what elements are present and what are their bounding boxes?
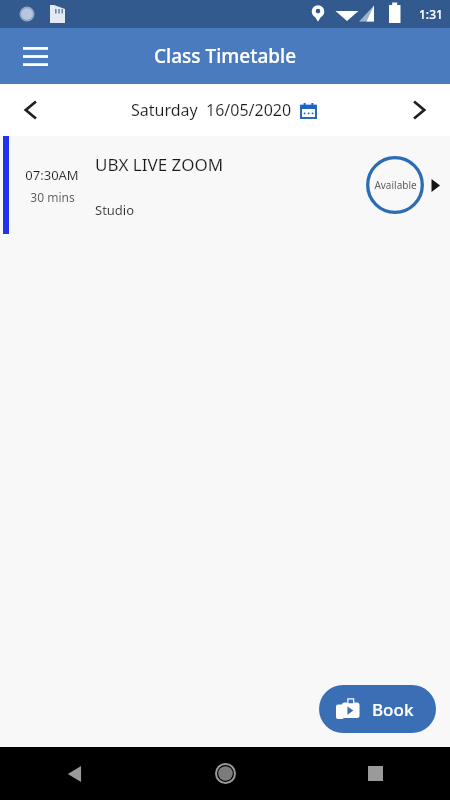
button[interactable]: Available (366, 156, 424, 214)
button[interactable]: Open class details (424, 165, 446, 205)
staticText: Book (372, 698, 414, 721)
staticText: 07:30AM (25, 166, 79, 184)
button[interactable]: Open navigation menu (11, 32, 59, 80)
button[interactable]: 07:30AM (0, 136, 450, 234)
button[interactable]: Home (185, 747, 265, 800)
staticText: 30 mins (30, 189, 75, 205)
staticText: 1:31 (419, 6, 443, 22)
staticText: UBX LIVE ZOOM (95, 153, 224, 176)
staticText: Class Timetable (154, 43, 297, 69)
button[interactable]: Next day (400, 88, 444, 132)
button[interactable]: Previous day (6, 88, 50, 132)
button[interactable]: Pick date (297, 99, 319, 121)
button[interactable]: Book (319, 685, 436, 733)
button[interactable]: Back (0, 747, 150, 800)
staticText: Saturday 16/05/2020 (131, 99, 292, 121)
staticText: Studio (95, 201, 135, 219)
button[interactable]: Recent apps (300, 747, 450, 800)
staticText: Available (374, 178, 417, 192)
